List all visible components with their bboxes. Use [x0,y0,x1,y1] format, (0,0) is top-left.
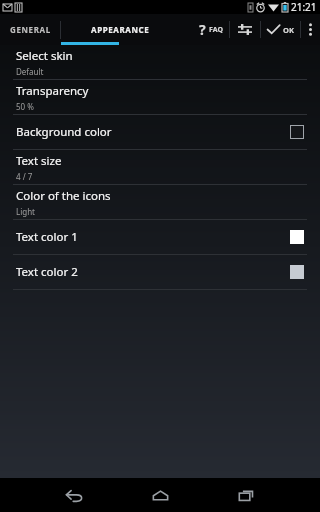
button[interactable]: GENERAL [0,14,60,45]
button[interactable]: Text color 1 [0,220,320,254]
staticText: FAQ [209,25,223,35]
staticText: Light [16,206,36,217]
button[interactable]: Recent apps [203,478,289,512]
button[interactable]: Color of the icons [0,185,320,219]
staticText: OK [283,25,294,35]
button[interactable]: Home [117,478,203,512]
button[interactable]: Text color 2 [0,255,320,289]
staticText: Transparency [16,83,89,99]
staticText: Text color 2 [16,264,290,280]
staticText: Default [16,66,44,77]
button[interactable]: Back [31,478,117,512]
staticText: 21:21 [291,0,317,14]
staticText: GENERAL [10,24,51,35]
staticText: Text color 1 [16,229,290,245]
button[interactable]: More options [301,14,320,45]
staticText: APPEARANCE [91,24,150,35]
button[interactable]: ? [193,14,229,45]
button[interactable]: Select skin [0,45,320,79]
button[interactable]: Transparency [0,80,320,114]
staticText: Background color [16,124,290,140]
staticText: Text size [16,153,62,169]
button[interactable]: Text size [0,150,320,184]
button[interactable]: OK [261,14,300,45]
staticText: Select skin [16,48,73,64]
staticText: 50 % [16,101,34,112]
staticText: ? [199,20,206,39]
staticText: Color of the icons [16,188,111,204]
button[interactable]: Background color [0,115,320,149]
staticText: 4 / 7 [16,171,33,182]
button[interactable]: Settings sliders [230,14,260,45]
button[interactable]: APPEARANCE [61,14,179,45]
